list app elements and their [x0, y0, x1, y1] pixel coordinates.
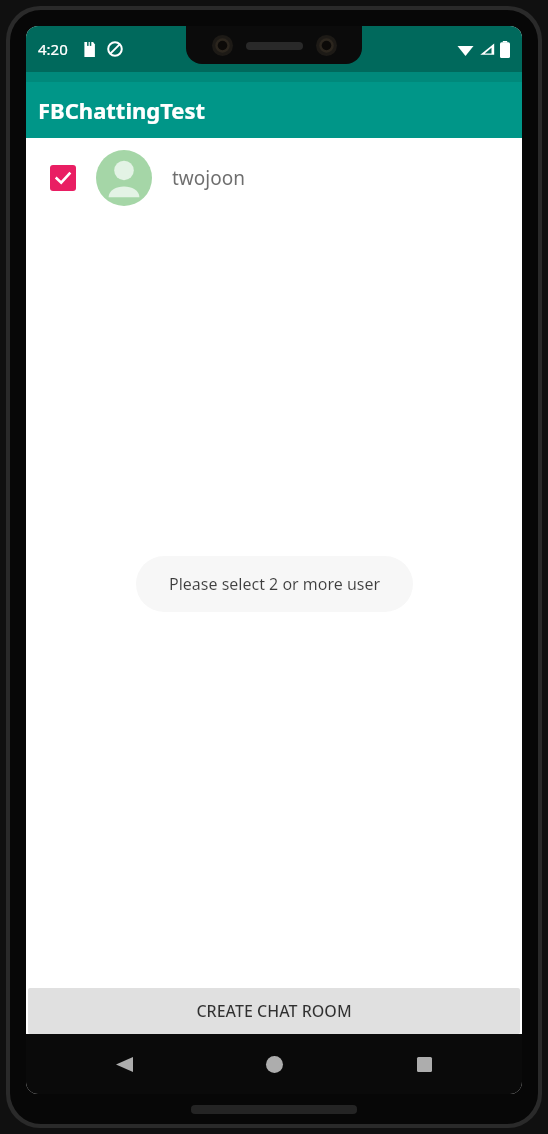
staticText: Please select 2 or more user	[169, 573, 381, 595]
button[interactable]: CREATE CHAT ROOM	[28, 988, 520, 1034]
button[interactable]: FBChattingTest	[26, 82, 522, 138]
staticText: FBChattingTest	[38, 95, 206, 125]
button[interactable]: Back	[102, 1042, 146, 1086]
button[interactable]: twojoon	[26, 138, 522, 218]
staticText: CREATE CHAT ROOM	[196, 1000, 352, 1022]
button[interactable]: Home	[252, 1042, 296, 1086]
button[interactable]: Recent apps	[402, 1042, 446, 1086]
staticText: twojoon	[172, 165, 245, 191]
staticText: 4:20	[38, 39, 68, 59]
